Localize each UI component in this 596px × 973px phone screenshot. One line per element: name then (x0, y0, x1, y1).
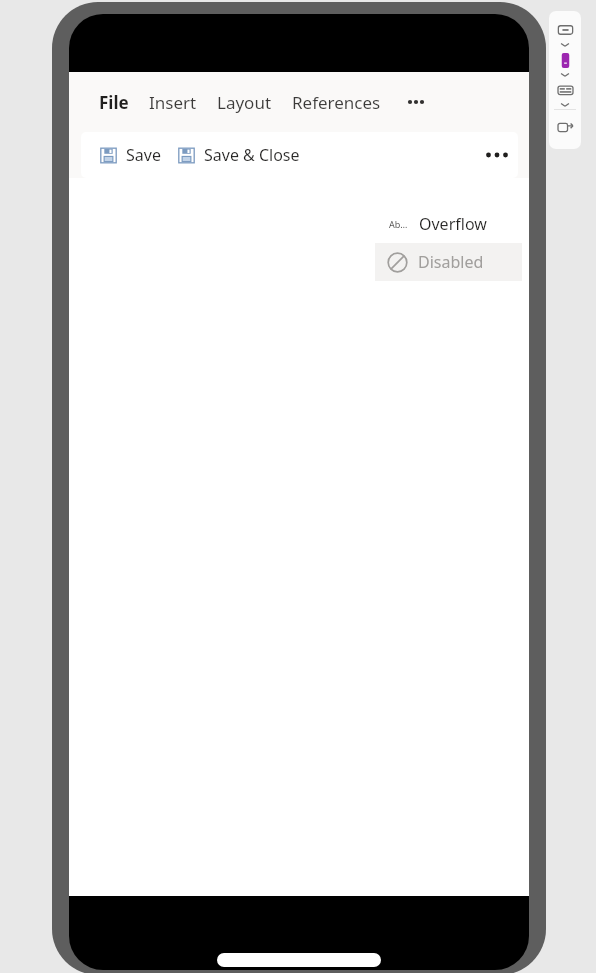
staticText: Disabled (418, 251, 484, 273)
button[interactable]: Keyboard (554, 79, 576, 101)
button[interactable]: File (89, 83, 139, 122)
button[interactable]: Export (554, 116, 576, 138)
button[interactable]: Display size (554, 19, 576, 41)
staticText: Save (126, 144, 161, 166)
staticText: Ab… (389, 218, 408, 230)
button[interactable]: Insert (139, 83, 207, 122)
staticText: File (99, 91, 129, 114)
button[interactable]: Disabled (375, 243, 522, 281)
button[interactable]: Save (96, 140, 164, 170)
button[interactable]: Device (554, 49, 576, 71)
staticText: Overflow (419, 213, 487, 235)
staticText: References (292, 91, 381, 114)
button[interactable]: More commands (476, 132, 518, 178)
button[interactable]: References (282, 83, 391, 122)
button[interactable]: More tabs (399, 85, 433, 119)
button[interactable]: Ab… (375, 205, 522, 243)
button[interactable]: Layout (207, 83, 282, 122)
button[interactable]: Save & Close (174, 140, 303, 170)
staticText: Layout (217, 91, 272, 114)
staticText: Save & Close (204, 144, 300, 166)
staticText: Insert (149, 91, 197, 114)
